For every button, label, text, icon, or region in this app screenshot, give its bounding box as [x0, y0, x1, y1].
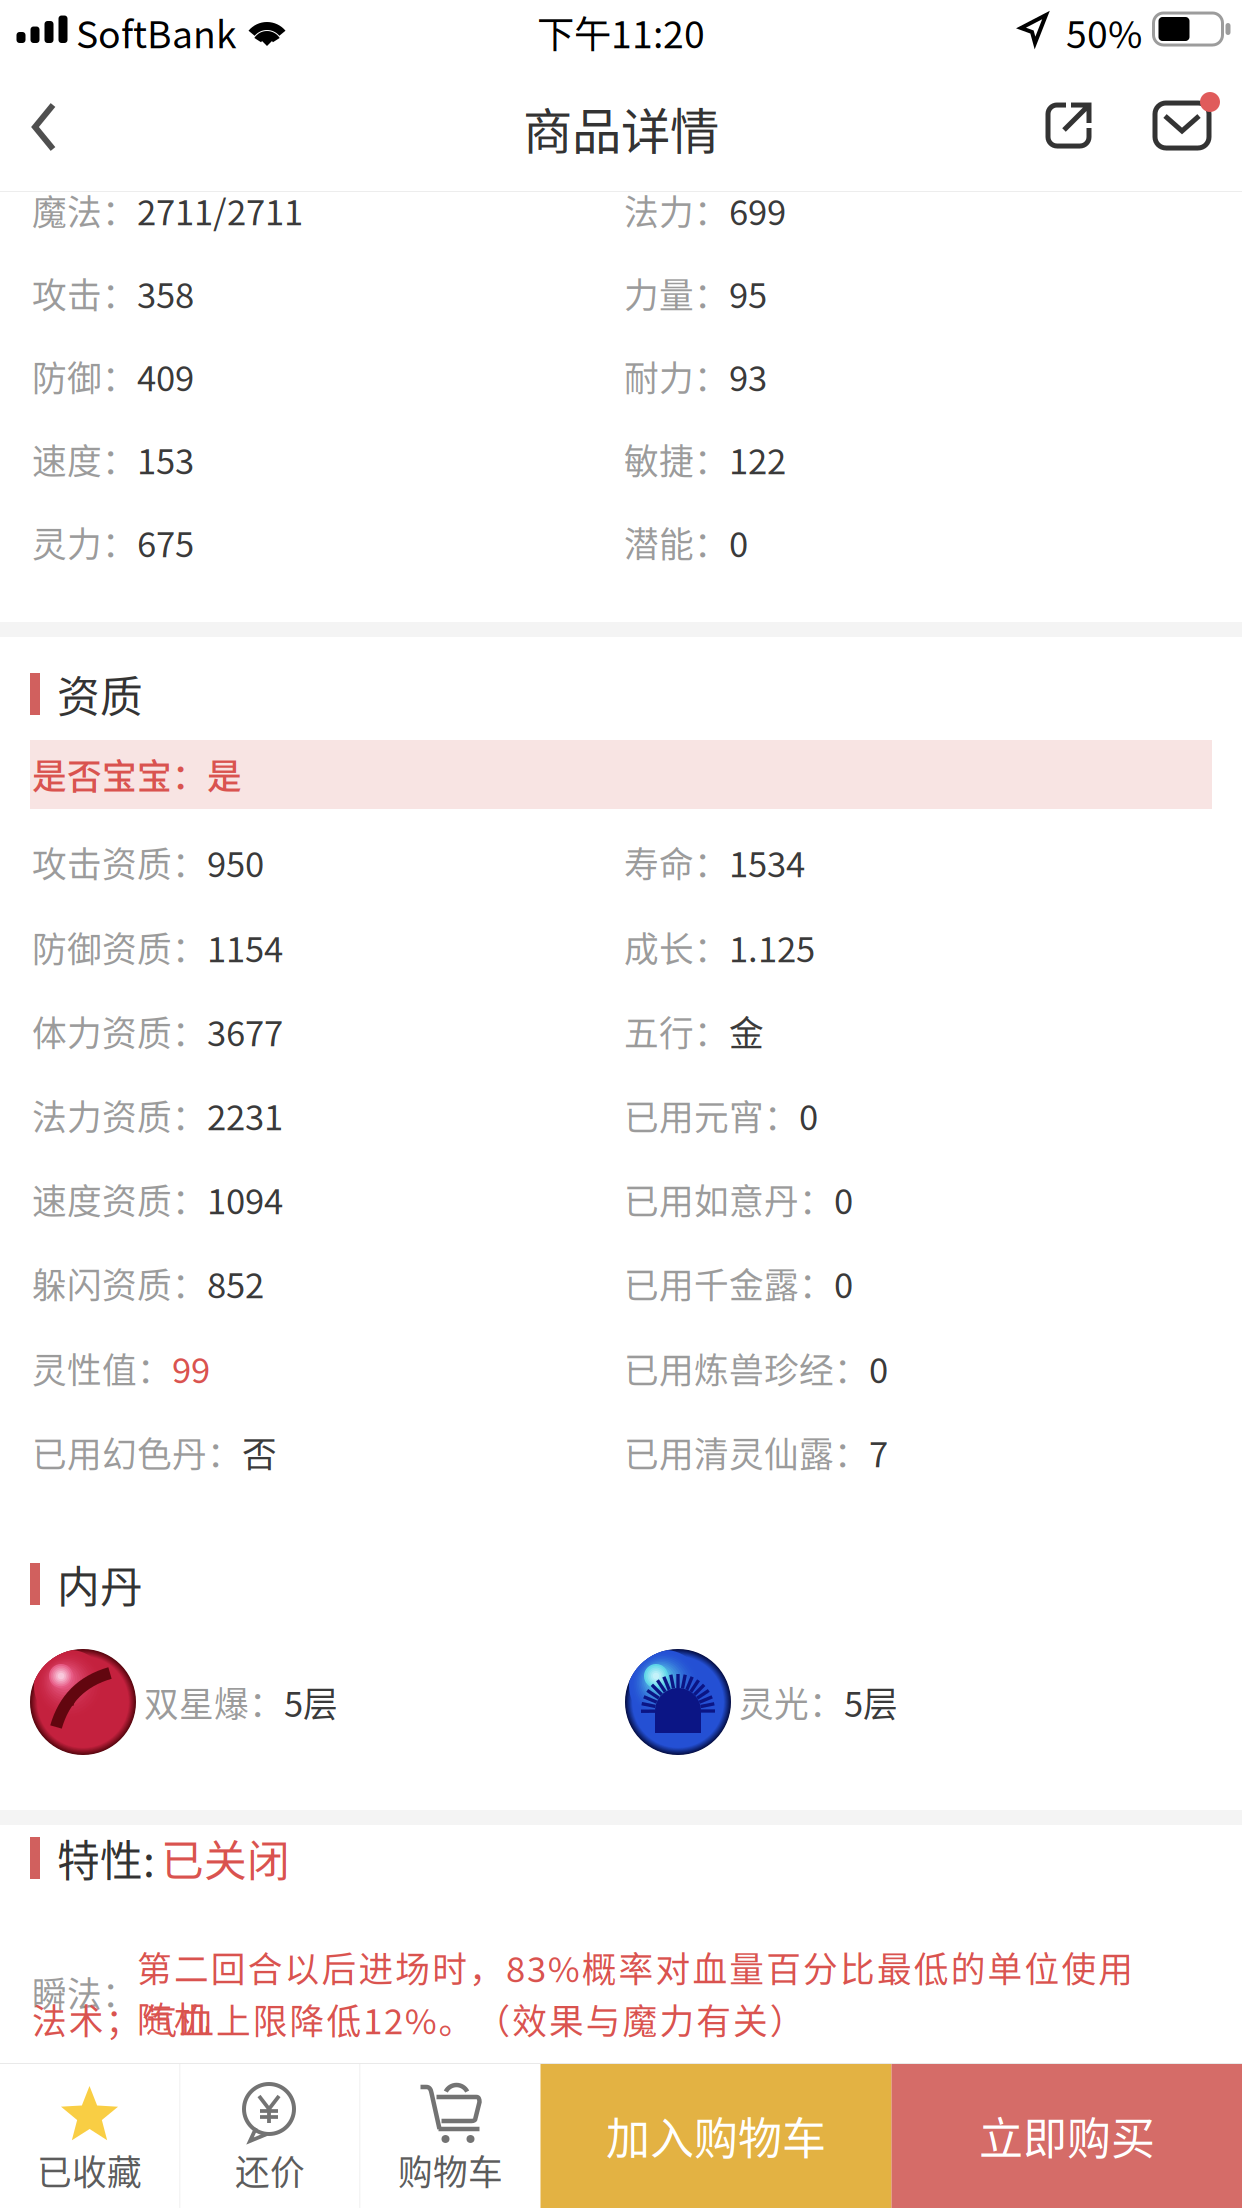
staticText: 潜能： [624, 517, 729, 567]
staticText: 699 [729, 185, 786, 235]
button[interactable]: 还价 [180, 2063, 359, 2208]
staticText: 否 [242, 1427, 277, 1477]
staticText: 2711/2711 [137, 185, 303, 235]
staticText: 已用千金露： [624, 1258, 834, 1308]
staticText: 409 [137, 351, 194, 401]
staticText: 122 [729, 434, 786, 484]
staticText: 攻击资质： [32, 837, 207, 887]
button[interactable]: 已收藏 [0, 2063, 179, 2208]
staticText: 是否宝宝：是 [32, 749, 242, 800]
staticText: 灵性值： [32, 1343, 172, 1393]
button[interactable]: 立即购买 [891, 2063, 1242, 2208]
staticText: 加入购物车 [606, 2104, 826, 2167]
staticText: 已用元宵： [624, 1090, 799, 1140]
staticText: 灵光： [739, 1677, 844, 1727]
staticText: 93 [729, 351, 767, 401]
staticText: 1094 [207, 1174, 283, 1224]
staticText: 358 [137, 268, 194, 318]
staticText: 金 [729, 1006, 764, 1056]
staticText: 已用幻色丹： [32, 1427, 242, 1477]
button[interactable]: 返回 [0, 88, 100, 192]
staticText: 速度： [32, 434, 137, 484]
staticText: 五行： [624, 1006, 729, 1056]
staticText: 防御资质： [32, 922, 207, 972]
staticText: 特性: [57, 1827, 155, 1889]
staticText: 0 [799, 1090, 818, 1140]
staticText: 2231 [207, 1090, 283, 1140]
staticText: 第二回合以后进场时，83%概率对血量百分比最低的单位使用随机 [137, 1942, 1170, 2042]
staticText: 寿命： [624, 837, 729, 887]
staticText: 灵力： [32, 517, 137, 567]
staticText: 魔法： [32, 185, 137, 235]
staticText: SoftBank [76, 5, 237, 59]
staticText: 成长： [624, 922, 729, 972]
staticText: 法力： [624, 185, 729, 235]
staticText: 速度资质： [32, 1174, 207, 1224]
staticText: 力量： [624, 268, 729, 318]
button[interactable]: 购物车 [360, 2063, 540, 2208]
button[interactable]: 消息 [1134, 88, 1230, 192]
staticText: 1.125 [729, 922, 815, 972]
staticText: 0 [834, 1258, 853, 1308]
staticText: 立即购买 [979, 2104, 1155, 2167]
staticText: 内丹 [57, 1553, 143, 1615]
staticText: 防御： [32, 351, 137, 401]
staticText: 商品详情 [523, 92, 719, 164]
staticText: 瞬法： [32, 1967, 137, 2017]
staticText: 还价 [235, 2145, 305, 2195]
staticText: 1534 [729, 837, 805, 887]
staticText: 法术；气血上限降低12%。（效果与魔力有关） [32, 1994, 805, 2044]
staticText: 0 [869, 1343, 888, 1393]
staticText: 已用如意丹： [624, 1174, 834, 1224]
staticText: 7 [869, 1427, 888, 1477]
staticText: 950 [207, 837, 264, 887]
staticText: 敏捷： [624, 434, 729, 484]
staticText: 3677 [207, 1006, 283, 1056]
staticText: 153 [137, 434, 194, 484]
staticText: 99 [172, 1343, 210, 1393]
staticText: 0 [834, 1174, 853, 1224]
staticText: 已收藏 [37, 2145, 142, 2195]
button[interactable]: 分享 [1021, 88, 1117, 192]
staticText: 已用炼兽珍经： [624, 1343, 869, 1393]
staticText: 852 [207, 1258, 264, 1308]
staticText: 50% [1066, 5, 1142, 59]
staticText: 下午11:20 [537, 5, 705, 59]
staticText: 体力资质： [32, 1006, 207, 1056]
staticText: 675 [137, 517, 194, 567]
staticText: 0 [729, 517, 748, 567]
staticText: 法力资质： [32, 1090, 207, 1140]
staticText: 已关闭 [161, 1827, 290, 1889]
staticText: 95 [729, 268, 767, 318]
staticText: 购物车 [398, 2145, 503, 2195]
staticText: 1154 [207, 922, 283, 972]
staticText: 5层 [844, 1677, 898, 1727]
staticText: 已用清灵仙露： [624, 1427, 869, 1477]
staticText: 耐力： [624, 351, 729, 401]
staticText: 攻击： [32, 268, 137, 318]
staticText: 资质 [57, 663, 143, 725]
button[interactable]: 加入购物车 [540, 2063, 891, 2208]
staticText: 双星爆： [144, 1677, 284, 1727]
staticText: 躲闪资质： [32, 1258, 207, 1308]
staticText: 5层 [284, 1677, 338, 1727]
